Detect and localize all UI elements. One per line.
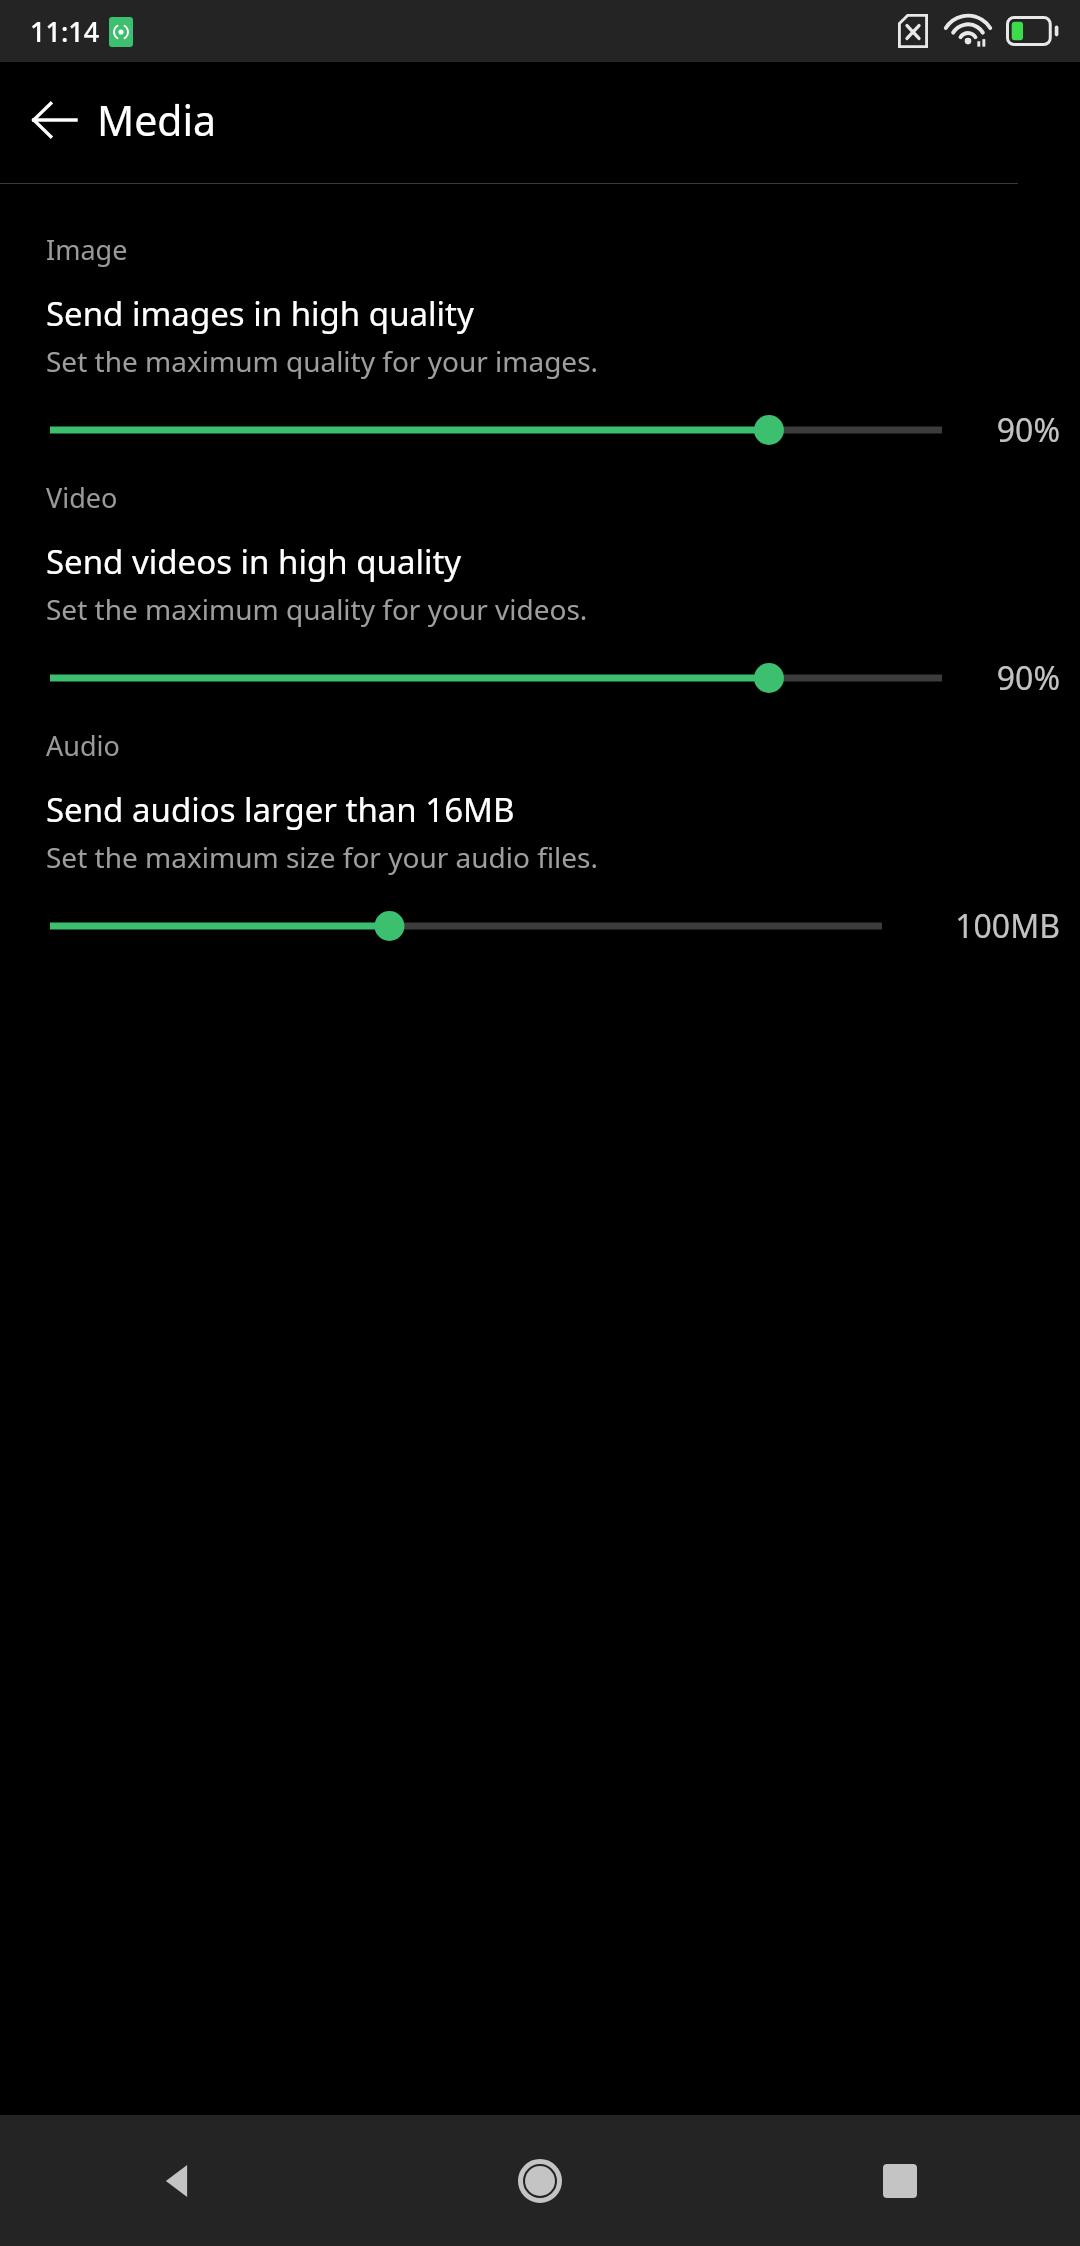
button[interactable] [50, 398, 942, 462]
staticText: Set the maximum quality for your images. [46, 342, 599, 380]
button[interactable] [50, 646, 942, 710]
staticText: Media [97, 92, 217, 148]
staticText: Audio [46, 727, 120, 764]
staticText: 90% [996, 408, 1060, 452]
staticText: Send videos in high quality [46, 539, 462, 584]
button[interactable]: Home [360, 2115, 720, 2246]
button[interactable]: Back [0, 2115, 360, 2246]
staticText: 90% [996, 656, 1060, 700]
button[interactable]: Back [18, 84, 90, 156]
button[interactable]: Recent apps [720, 2115, 1080, 2246]
staticText: Image [46, 231, 128, 268]
staticText: Send audios larger than 16MB [46, 787, 515, 832]
staticText: Video [46, 479, 118, 516]
staticText: Set the maximum size for your audio file… [46, 838, 599, 876]
staticText: 100MB [955, 904, 1060, 948]
staticText: Send images in high quality [46, 291, 474, 336]
staticText: Set the maximum quality for your videos. [46, 590, 588, 628]
staticText: 11:14 [30, 13, 100, 50]
button[interactable] [50, 894, 882, 958]
